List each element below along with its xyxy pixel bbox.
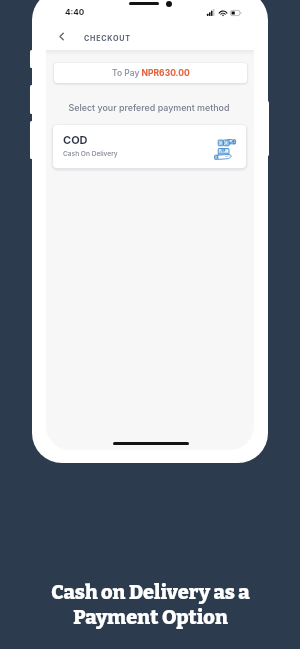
staticText: CHECKOUT: [84, 34, 131, 43]
staticText: 4:40: [65, 7, 85, 17]
button[interactable]: Back: [53, 29, 67, 43]
button[interactable]: To Pay NPR630.00: [54, 63, 247, 83]
staticText: Select your prefered payment method: [46, 102, 253, 113]
staticText: Cash on Delivery as a Payment Option: [51, 580, 250, 630]
staticText: To Pay NPR630.00: [112, 68, 190, 78]
staticText: COD: [63, 133, 88, 146]
button[interactable]: COD: [53, 125, 246, 168]
staticText: Cash On Delivery: [63, 150, 118, 158]
